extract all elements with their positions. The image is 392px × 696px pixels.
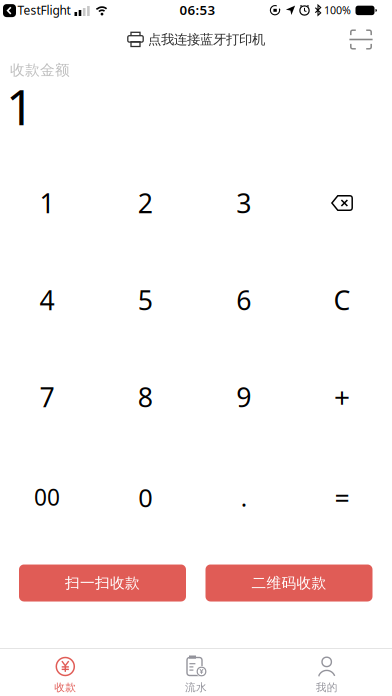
staticText: 二维码收款 (251, 574, 326, 592)
button[interactable]: 0 (96, 449, 194, 545)
staticText: 扫一扫收款 (65, 574, 140, 592)
button[interactable]: 00 (0, 449, 96, 545)
staticText: 2 (138, 185, 153, 221)
button[interactable]: 6 (195, 252, 293, 348)
button[interactable]: 3 (195, 155, 293, 251)
staticText: 4 (39, 282, 54, 318)
staticText: 100% (324, 3, 351, 17)
staticText: 收款金额 (10, 61, 70, 79)
staticText: 收款 (54, 681, 76, 694)
staticText: 06:53 (179, 1, 215, 19)
staticText: TestFlight (17, 2, 70, 18)
staticText: 8 (138, 379, 153, 415)
button[interactable]: 9 (195, 349, 293, 445)
button[interactable]: + (293, 349, 391, 445)
button[interactable]: 8 (96, 349, 194, 445)
button[interactable]: 流水 (131, 649, 261, 696)
staticText: 点我连接蓝牙打印机 (148, 31, 265, 48)
button[interactable]: 5 (96, 252, 194, 348)
staticText: 5 (138, 282, 153, 318)
staticText: 流水 (185, 681, 207, 694)
staticText: C (333, 282, 350, 318)
staticText: 1 (6, 73, 34, 139)
button[interactable]: 1 (0, 155, 96, 251)
staticText: 7 (39, 379, 54, 415)
staticText: 6 (236, 282, 251, 318)
button[interactable]: 我的 (262, 649, 392, 696)
staticText: 00 (34, 482, 60, 512)
staticText: + (334, 378, 350, 416)
button[interactable]: 扫码 (344, 24, 378, 54)
staticText: 我的 (316, 681, 338, 694)
staticText: 1 (39, 185, 54, 221)
button[interactable]: 4 (0, 252, 96, 348)
button[interactable]: C (293, 252, 391, 348)
button[interactable]: . (195, 449, 293, 545)
button[interactable]: 点我连接蓝牙打印机 (127, 24, 265, 54)
staticText: 0 (138, 481, 152, 514)
staticText: 9 (236, 379, 251, 415)
button[interactable]: = (293, 449, 391, 545)
button[interactable]: 7 (0, 349, 96, 445)
staticText: . (241, 482, 247, 513)
button[interactable]: 收款 (0, 649, 130, 696)
button[interactable]: 2 (96, 155, 194, 251)
staticText: 3 (236, 185, 251, 221)
staticText: = (334, 480, 349, 515)
button[interactable]: 二维码收款 (205, 564, 372, 601)
button[interactable]: 删除 (293, 155, 391, 251)
button[interactable]: 扫一扫收款 (19, 564, 186, 601)
